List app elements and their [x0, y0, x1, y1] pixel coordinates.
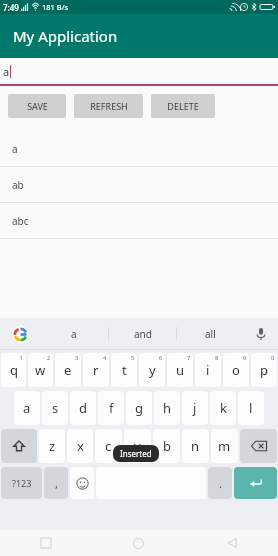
- staticText: 1: [20, 354, 24, 361]
- staticText: ,: [55, 476, 58, 491]
- staticText: 0: [271, 354, 275, 361]
- staticText: abc: [12, 214, 29, 228]
- staticText: a: [3, 64, 10, 79]
- button[interactable]: Back: [185, 530, 278, 556]
- staticText: p: [260, 361, 268, 379]
- button[interactable]: .: [208, 467, 232, 499]
- button[interactable]: j: [182, 391, 208, 425]
- staticText: ?123: [12, 477, 32, 489]
- button[interactable]: l: [238, 391, 264, 425]
- staticText: w: [35, 361, 46, 379]
- staticText: b: [163, 437, 171, 455]
- button[interactable]: REFRESH: [74, 94, 143, 118]
- button[interactable]: b: [153, 429, 180, 463]
- button[interactable]: a: [40, 318, 108, 350]
- staticText: l: [249, 399, 253, 417]
- button[interactable]: r: [83, 353, 109, 387]
- staticText: q: [10, 361, 18, 379]
- staticText: e: [64, 361, 72, 379]
- staticText: o: [232, 361, 240, 379]
- button[interactable]: d: [70, 391, 96, 425]
- staticText: 7:49: [3, 2, 19, 13]
- staticText: c: [105, 437, 112, 455]
- staticText: n: [191, 437, 200, 455]
- staticText: and: [134, 327, 152, 341]
- staticText: t: [122, 361, 127, 379]
- button[interactable]: e: [55, 353, 81, 387]
- button[interactable]: c: [95, 429, 122, 463]
- button[interactable]: k: [210, 391, 236, 425]
- button[interactable]: f: [98, 391, 124, 425]
- button[interactable]: and: [109, 318, 176, 350]
- button[interactable]: all: [177, 318, 244, 350]
- button[interactable]: i: [195, 353, 221, 387]
- button[interactable]: Voice input: [244, 318, 278, 350]
- staticText: Inserted: [120, 448, 152, 459]
- button[interactable]: a: [0, 58, 278, 86]
- button[interactable]: u: [167, 353, 193, 387]
- staticText: 9: [243, 354, 247, 361]
- staticText: x: [77, 437, 84, 455]
- button[interactable]: m: [211, 429, 238, 463]
- staticText: r: [93, 361, 99, 379]
- staticText: SAVE: [27, 100, 48, 112]
- button[interactable]: y: [139, 353, 165, 387]
- button[interactable]: s: [42, 391, 68, 425]
- staticText: a: [12, 142, 18, 156]
- button[interactable]: z: [39, 429, 65, 463]
- button[interactable]: h: [154, 391, 180, 425]
- staticText: a: [71, 327, 77, 341]
- button[interactable]: q: [1, 353, 26, 387]
- staticText: d: [79, 399, 87, 417]
- button[interactable]: n: [182, 429, 209, 463]
- button[interactable]: Recents: [0, 530, 92, 556]
- staticText: 2: [47, 354, 51, 361]
- button[interactable]: Shift: [1, 429, 37, 463]
- staticText: 3: [75, 354, 79, 361]
- button[interactable]: x: [67, 429, 93, 463]
- button[interactable]: Backspace: [240, 429, 277, 463]
- button[interactable]: ,: [44, 467, 68, 499]
- staticText: .: [219, 476, 222, 491]
- staticText: 5: [131, 354, 135, 361]
- staticText: REFRESH: [90, 100, 128, 112]
- staticText: all: [205, 327, 216, 341]
- button[interactable]: o: [223, 353, 249, 387]
- button[interactable]: ab: [0, 167, 278, 203]
- staticText: 7: [187, 354, 191, 361]
- staticText: i: [206, 361, 210, 379]
- button[interactable]: Enter: [234, 467, 277, 499]
- staticText: 181 B/s: [42, 2, 69, 12]
- button[interactable]: a: [0, 131, 278, 167]
- staticText: m: [218, 437, 231, 455]
- button[interactable]: a: [14, 391, 40, 425]
- button[interactable]: abc: [0, 203, 278, 239]
- staticText: k: [220, 399, 227, 417]
- staticText: 8: [215, 354, 219, 361]
- button[interactable]: p: [251, 353, 277, 387]
- button[interactable]: v: [124, 429, 151, 463]
- button[interactable]: t: [111, 353, 137, 387]
- button[interactable]: DELETE: [151, 94, 215, 118]
- staticText: u: [176, 361, 185, 379]
- staticText: y: [149, 361, 156, 379]
- staticText: 4: [103, 354, 107, 361]
- staticText: h: [163, 399, 172, 417]
- button[interactable]: Emoji: [70, 467, 94, 499]
- button[interactable]: w: [28, 353, 53, 387]
- staticText: a: [23, 399, 31, 417]
- staticText: DELETE: [167, 100, 199, 112]
- staticText: My Application: [13, 26, 118, 46]
- button[interactable]: ?123: [1, 467, 42, 499]
- button[interactable]: Google: [0, 318, 40, 350]
- staticText: g: [135, 399, 143, 417]
- staticText: z: [49, 437, 56, 455]
- button[interactable]: Home: [92, 530, 185, 556]
- staticText: v: [134, 437, 141, 455]
- staticText: ab: [12, 178, 24, 192]
- staticText: f: [109, 399, 114, 417]
- button[interactable]: g: [126, 391, 152, 425]
- staticText: j: [193, 399, 197, 417]
- button[interactable]: SAVE: [8, 94, 66, 118]
